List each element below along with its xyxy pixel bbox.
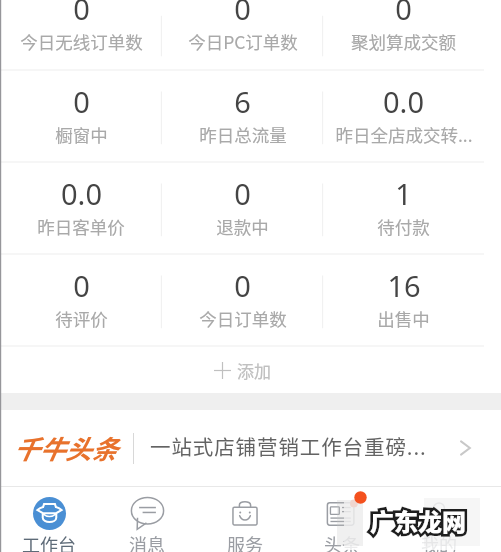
- staticText: 添加: [237, 358, 271, 383]
- staticText: 一站式店铺营销工作台重磅...: [150, 431, 427, 461]
- staticText: 0.0: [61, 174, 102, 213]
- staticText: 昨日全店成交转...: [335, 122, 473, 147]
- staticText: 昨日总流量: [199, 122, 287, 147]
- button[interactable]: 0.0: [0, 163, 162, 254]
- staticText: 0: [73, 266, 90, 305]
- staticText: 0: [395, 0, 412, 28]
- button[interactable]: 1: [323, 163, 484, 254]
- staticText: 0.0: [383, 82, 424, 121]
- button[interactable]: 添加: [0, 347, 484, 393]
- staticText: 6: [234, 82, 251, 121]
- button[interactable]: 16: [323, 255, 484, 346]
- staticText: 服务: [227, 531, 263, 552]
- staticText: 昨日客单价: [37, 214, 125, 239]
- button[interactable]: 0: [162, 163, 323, 254]
- staticText: 0: [234, 0, 251, 28]
- staticText: 消息: [129, 531, 165, 552]
- staticText: 我的: [421, 531, 457, 552]
- staticText: 0: [234, 174, 251, 213]
- staticText: 广东龙网: [370, 503, 466, 538]
- staticText: 退款中: [216, 214, 269, 239]
- staticText: 0: [73, 0, 90, 28]
- button[interactable]: 工作台: [0, 487, 98, 552]
- button[interactable]: 千牛头条: [0, 410, 501, 486]
- button[interactable]: 0: [162, 255, 323, 346]
- button[interactable]: 0.0: [323, 71, 484, 162]
- staticText: 0: [73, 82, 90, 121]
- staticText: 千牛头条: [13, 429, 118, 467]
- staticText: 聚划算成交额: [351, 29, 456, 54]
- button[interactable]: 0: [0, 255, 162, 346]
- staticText: 头条: [324, 531, 360, 552]
- button[interactable]: 0: [323, 0, 484, 48]
- button[interactable]: 头条: [293, 487, 390, 552]
- button[interactable]: 0: [162, 0, 323, 48]
- button[interactable]: 消息: [98, 487, 196, 552]
- staticText: 橱窗中: [55, 122, 108, 147]
- staticText: 广东龙网: [370, 503, 466, 538]
- button[interactable]: 6: [162, 71, 323, 162]
- staticText: 今日PC订单数: [188, 29, 298, 54]
- staticText: 工作台: [22, 531, 76, 552]
- staticText: 待评价: [55, 306, 108, 331]
- button[interactable]: 服务: [196, 487, 293, 552]
- staticText: 1: [395, 174, 412, 213]
- staticText: 今日订单数: [199, 306, 287, 331]
- staticText: 16: [387, 266, 421, 305]
- staticText: 今日无线订单数: [20, 29, 143, 54]
- staticText: 0: [234, 266, 251, 305]
- staticText: 待付款: [377, 214, 430, 239]
- button[interactable]: 0: [0, 71, 162, 162]
- button[interactable]: 0: [0, 0, 162, 48]
- button[interactable]: 我的: [390, 487, 487, 552]
- staticText: 出售中: [377, 306, 430, 331]
